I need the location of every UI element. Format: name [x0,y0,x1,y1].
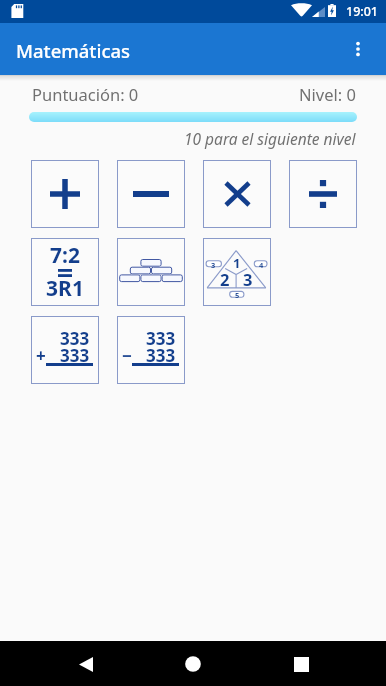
button[interactable]: Home [171,642,215,686]
button[interactable]: 7:2 [31,238,99,306]
button[interactable]: Back [64,642,108,686]
staticText: 3 [243,268,253,290]
button[interactable] [117,238,185,306]
staticText: 7:2 [50,241,80,270]
staticText: 19:01 [346,3,379,20]
button[interactable]: Recents [279,642,323,686]
button[interactable] [203,160,271,228]
staticText: 2 [220,268,230,290]
button[interactable] [117,160,185,228]
staticText: Puntuación: 0 [32,83,139,105]
staticText: Matemáticas [16,38,131,63]
staticText: 3R1 [46,274,84,303]
button[interactable] [31,160,99,228]
button[interactable]: More options [338,29,378,69]
staticText: Nivel: 0 [299,83,356,105]
staticText: + [36,344,46,367]
staticText: 1 [233,254,241,272]
staticText: 333 [60,327,90,350]
button[interactable]: 333 [31,316,99,384]
button[interactable] [289,160,357,228]
staticText: 333 [146,327,176,350]
staticText: 333 [146,344,176,367]
staticText: 333 [60,344,90,367]
staticText: 3 [211,260,216,270]
staticText: 4 [259,260,264,270]
staticText: 10 para el siguiente nivel [184,128,356,149]
button[interactable]: 333 [117,316,185,384]
staticText: 5 [235,290,240,300]
button[interactable]: 1 [203,238,271,306]
staticText: − [122,344,132,367]
